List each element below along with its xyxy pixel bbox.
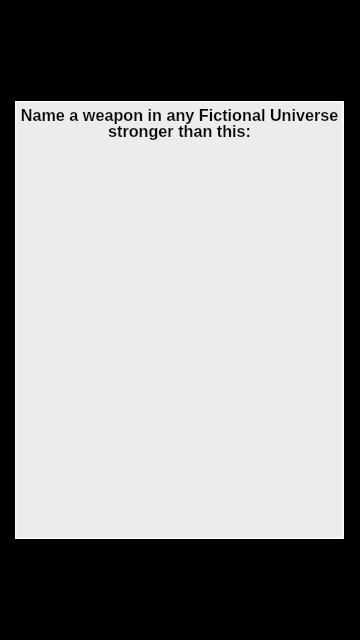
staticText: Name a weapon in any Fictional Universe … — [17, 106, 342, 140]
button[interactable]: Meme image post — [15, 101, 344, 539]
